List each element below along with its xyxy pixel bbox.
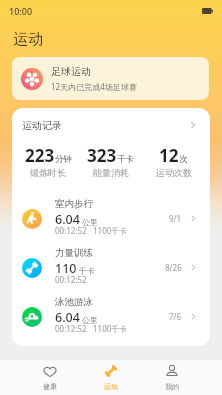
staticText: 12天内已完成4场足球赛 (51, 81, 137, 92)
staticText: 室内步行 (55, 198, 93, 210)
staticText: 公里 (80, 216, 99, 227)
staticText: 7/6 (169, 311, 182, 322)
staticText: 千卡 (117, 154, 134, 165)
staticText: 运动次数 (156, 167, 192, 178)
staticText: 00:12:52 1100千卡 (55, 323, 128, 334)
staticText: 足球运动 (51, 65, 91, 78)
staticText: 力量训练 (55, 247, 93, 259)
button[interactable]: 力量训练 (12, 243, 210, 292)
button[interactable]: 室内步行 (12, 194, 210, 243)
button[interactable]: 足球运动 (12, 57, 209, 100)
staticText: 千卡 (77, 265, 96, 276)
staticText: 我的 (165, 382, 179, 391)
staticText: 9/1 (169, 213, 182, 224)
staticText: 110 (55, 260, 77, 277)
staticText: 能量消耗 (93, 167, 129, 178)
staticText: 223 (25, 144, 55, 167)
staticText: 锻炼时长 (30, 167, 66, 178)
button[interactable]: 我的 (141, 360, 202, 395)
staticText: 次 (179, 154, 188, 165)
staticText: 6.04 (55, 211, 80, 228)
staticText: 10:00 (9, 5, 33, 17)
staticText: 公里 (80, 314, 99, 325)
button[interactable]: 运动记录 (12, 108, 210, 142)
staticText: 运动 (13, 30, 43, 49)
button[interactable]: 泳池游泳 (12, 292, 210, 341)
staticText: 6.04 (55, 309, 80, 326)
button[interactable]: 运动 (80, 360, 141, 395)
staticText: 8/26 (165, 262, 182, 273)
staticText: 12 (159, 144, 179, 167)
staticText: 泳池游泳 (55, 296, 93, 308)
staticText: 分钟 (55, 154, 72, 165)
staticText: 运动记录 (22, 119, 62, 132)
staticText: 323 (87, 144, 117, 167)
staticText: 健康 (43, 382, 57, 391)
staticText: 00:12:52 (55, 274, 87, 285)
button[interactable]: 健康 (20, 360, 80, 395)
staticText: 运动 (104, 382, 118, 391)
staticText: 00:12:52 1100千卡 (55, 225, 128, 236)
other: Battery (202, 8, 213, 14)
